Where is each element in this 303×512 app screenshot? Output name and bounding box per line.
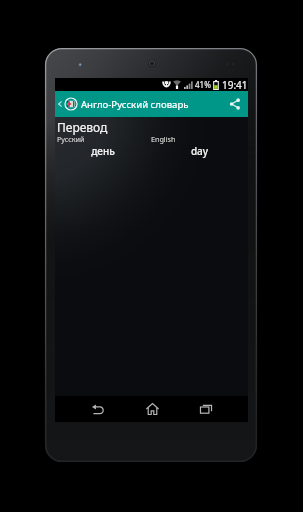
staticText: Перевод <box>57 119 108 135</box>
staticText: 19:41 <box>222 78 248 91</box>
button[interactable]: день <box>55 144 248 158</box>
button[interactable]: Back <box>71 396 125 422</box>
staticText: день <box>55 144 151 158</box>
staticText: Русский <box>57 134 85 144</box>
button[interactable]: Navigate up <box>55 94 79 114</box>
button[interactable]: Home <box>125 396 179 422</box>
staticText: 41% <box>195 79 211 90</box>
staticText: English <box>151 134 176 144</box>
button[interactable]: Share <box>222 91 248 117</box>
staticText: Англо-Русский словарь <box>81 98 189 111</box>
button[interactable]: Recent apps <box>179 396 233 422</box>
staticText: day <box>151 144 248 158</box>
